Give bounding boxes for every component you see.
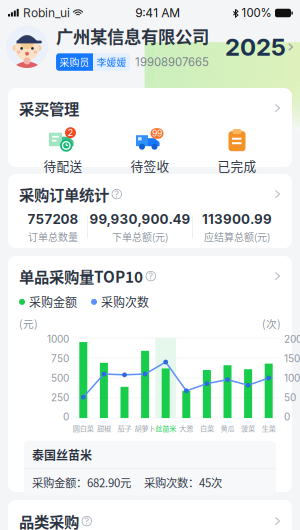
staticText: 采购次数 — [101, 293, 149, 311]
button[interactable]: 已完成 — [193, 125, 280, 176]
staticText: 单品采购量TOP10 — [19, 265, 143, 287]
staticText: 采购订单统计 — [19, 183, 109, 205]
staticText: (元) — [19, 316, 38, 331]
staticText: ? — [148, 270, 153, 282]
staticText: 0 — [63, 411, 69, 423]
staticText: 200 — [284, 333, 300, 345]
button[interactable]: 单品采购量TOP10 — [19, 265, 281, 287]
staticText: 100% — [241, 6, 271, 20]
staticText: 19908907665 — [135, 55, 209, 69]
staticText: 待配送 — [43, 156, 82, 174]
staticText: 泰国丝苗米 — [32, 446, 92, 463]
staticText: 1000 — [47, 333, 69, 345]
staticText: ? — [114, 188, 119, 200]
staticText: 已完成 — [217, 156, 256, 174]
staticText: 茄子 — [117, 423, 131, 433]
staticText: 500 — [51, 372, 69, 384]
staticText: 250 — [51, 391, 69, 403]
staticText: 采购次数：45次 — [144, 474, 222, 490]
staticText: 100 — [284, 372, 300, 384]
staticText: 订单总数量 — [28, 229, 78, 244]
staticText: 圆白菜 — [73, 423, 94, 433]
staticText: 50 — [284, 391, 296, 403]
button[interactable]: 品类采购 — [8, 500, 292, 530]
staticText: 150 — [284, 352, 300, 365]
staticText: 广州某信息有限公司 — [56, 23, 209, 48]
button[interactable]: 2 — [19, 125, 106, 176]
staticText: 0 — [284, 411, 290, 423]
staticText: 757208 — [27, 211, 78, 227]
staticText: 采购员 — [60, 55, 90, 69]
staticText: 胡萝卜 — [135, 423, 156, 433]
staticText: 白菜 — [200, 423, 214, 433]
staticText: 2025 — [225, 32, 286, 61]
staticText: 黄瓜 — [220, 423, 234, 433]
staticText: 生菜 — [262, 423, 276, 433]
staticText: 李媛媛 — [97, 55, 127, 69]
staticText: 750 — [51, 352, 69, 365]
button[interactable]: 2025 — [225, 32, 294, 61]
staticText: 采买管理 — [19, 97, 79, 119]
staticText: 应结算总额(元) — [204, 229, 270, 244]
staticText: 丝苗米 — [155, 423, 176, 433]
staticText: 99 — [152, 128, 162, 139]
button[interactable]: 采买管理 — [19, 97, 281, 119]
staticText: 大葱 — [179, 423, 193, 433]
staticText: 采购金额 — [29, 293, 77, 311]
staticText: Robin_ui — [23, 6, 70, 20]
staticText: 待签收 — [130, 156, 169, 174]
button[interactable]: 99 — [106, 125, 193, 176]
staticText: 99,930,900.49 — [89, 211, 190, 227]
staticText: 菠菜 — [241, 423, 255, 433]
staticText: 2 — [67, 127, 73, 138]
staticText: 下单总额(元) — [112, 229, 168, 244]
button[interactable]: 采购订单统计 — [19, 183, 281, 205]
staticText: 113900.99 — [202, 211, 272, 227]
staticText: 品类采购 — [19, 510, 79, 530]
staticText: ? — [84, 515, 89, 527]
staticText: 9:41 AM — [135, 6, 180, 20]
staticText: 采购金额：682.90元 — [32, 474, 131, 490]
staticText: (次) — [262, 316, 281, 331]
staticText: 甜椒 — [97, 423, 111, 433]
